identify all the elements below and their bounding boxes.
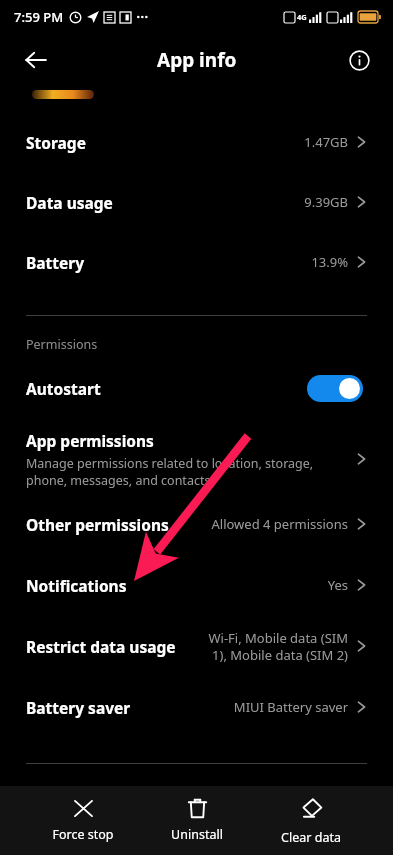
- staticText: 9.39GB: [304, 193, 348, 211]
- staticText: Data usage: [26, 192, 113, 213]
- button[interactable]: Battery: [0, 232, 393, 292]
- button[interactable]: Notifications: [0, 555, 393, 615]
- staticText: 13.9%: [311, 253, 348, 271]
- staticText: Other permissions: [26, 514, 169, 535]
- button[interactable]: Battery saver: [0, 677, 393, 737]
- button[interactable]: Clear data: [266, 786, 356, 846]
- staticText: 1.47GB: [304, 133, 348, 151]
- button[interactable]: Uninstall: [152, 786, 242, 843]
- staticText: Force stop: [38, 826, 128, 843]
- staticText: Yes: [327, 576, 348, 594]
- staticText: Restrict data usage: [26, 636, 176, 657]
- staticText: Permissions: [26, 336, 98, 353]
- staticText: Allowed 4 permissions: [211, 515, 348, 533]
- button[interactable]: Data usage: [0, 172, 393, 232]
- staticText: Storage: [26, 132, 86, 153]
- staticText: Notifications: [26, 575, 127, 596]
- button[interactable]: App permissions: [0, 425, 393, 493]
- button[interactable]: Force stop: [38, 786, 128, 843]
- staticText: Uninstall: [152, 826, 242, 843]
- staticText: Autostart: [26, 378, 307, 399]
- staticText: 7:59 PM: [14, 8, 64, 26]
- button[interactable]: Back: [14, 38, 58, 82]
- staticText: Wi-Fi, Mobile data (SIM 1), Mobile data …: [196, 629, 348, 664]
- staticText: Battery saver: [26, 697, 131, 718]
- button[interactable]: About: [339, 40, 379, 80]
- button[interactable]: Other permissions: [0, 493, 393, 555]
- button[interactable]: Restrict data usage: [0, 615, 393, 677]
- button[interactable]: Storage: [0, 112, 393, 172]
- staticText: Manage permissions related to location, …: [26, 455, 314, 489]
- staticText: Battery: [26, 252, 85, 273]
- staticText: App permissions: [26, 430, 154, 451]
- button[interactable]: Autostart: [0, 367, 393, 409]
- staticText: MIUI Battery saver: [233, 698, 348, 716]
- button[interactable]: [307, 375, 363, 402]
- staticText: Clear data: [266, 829, 356, 846]
- staticText: App info: [157, 47, 237, 73]
- staticText: 4G: [297, 12, 307, 22]
